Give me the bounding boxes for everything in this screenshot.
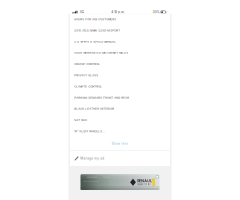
staticText: 2.0 184PS 6 SPEED MANUAL (74, 40, 116, 43)
staticText: PRIVACY GLASS (74, 74, 98, 77)
button[interactable]: Show less (70, 137, 170, 150)
button[interactable]: Renault advertisement (80, 174, 159, 190)
staticText: 3G (80, 10, 84, 14)
staticText: 4:10 p.m. (111, 10, 125, 14)
staticText: RENAULT (137, 179, 154, 183)
staticText: Passion for life (137, 183, 150, 186)
staticText: CLIMATE CONTROL (74, 85, 102, 88)
staticText: 19" ALLOY WHEELS... (74, 130, 105, 133)
staticText: HOURS FOR AIB CUSTOMERS (74, 18, 116, 21)
button[interactable]: Manage my ad (70, 151, 170, 166)
staticText: PARKING SENSORS FRONT AND REAR (74, 96, 129, 99)
staticText: CRUISE CONTROL (74, 62, 100, 66)
staticText: SAT NAV (74, 118, 87, 122)
staticText: 500K WARRANTED MOTORWAY MILES (74, 51, 128, 54)
staticText: 33% (153, 10, 160, 14)
staticText: BLACK LEATHER INTERIOR (74, 107, 114, 110)
staticText: Show less (111, 142, 128, 145)
staticText: Manage my ad (80, 156, 104, 160)
staticText: 2015 (152) BMW 320D M SPORT (74, 29, 120, 32)
